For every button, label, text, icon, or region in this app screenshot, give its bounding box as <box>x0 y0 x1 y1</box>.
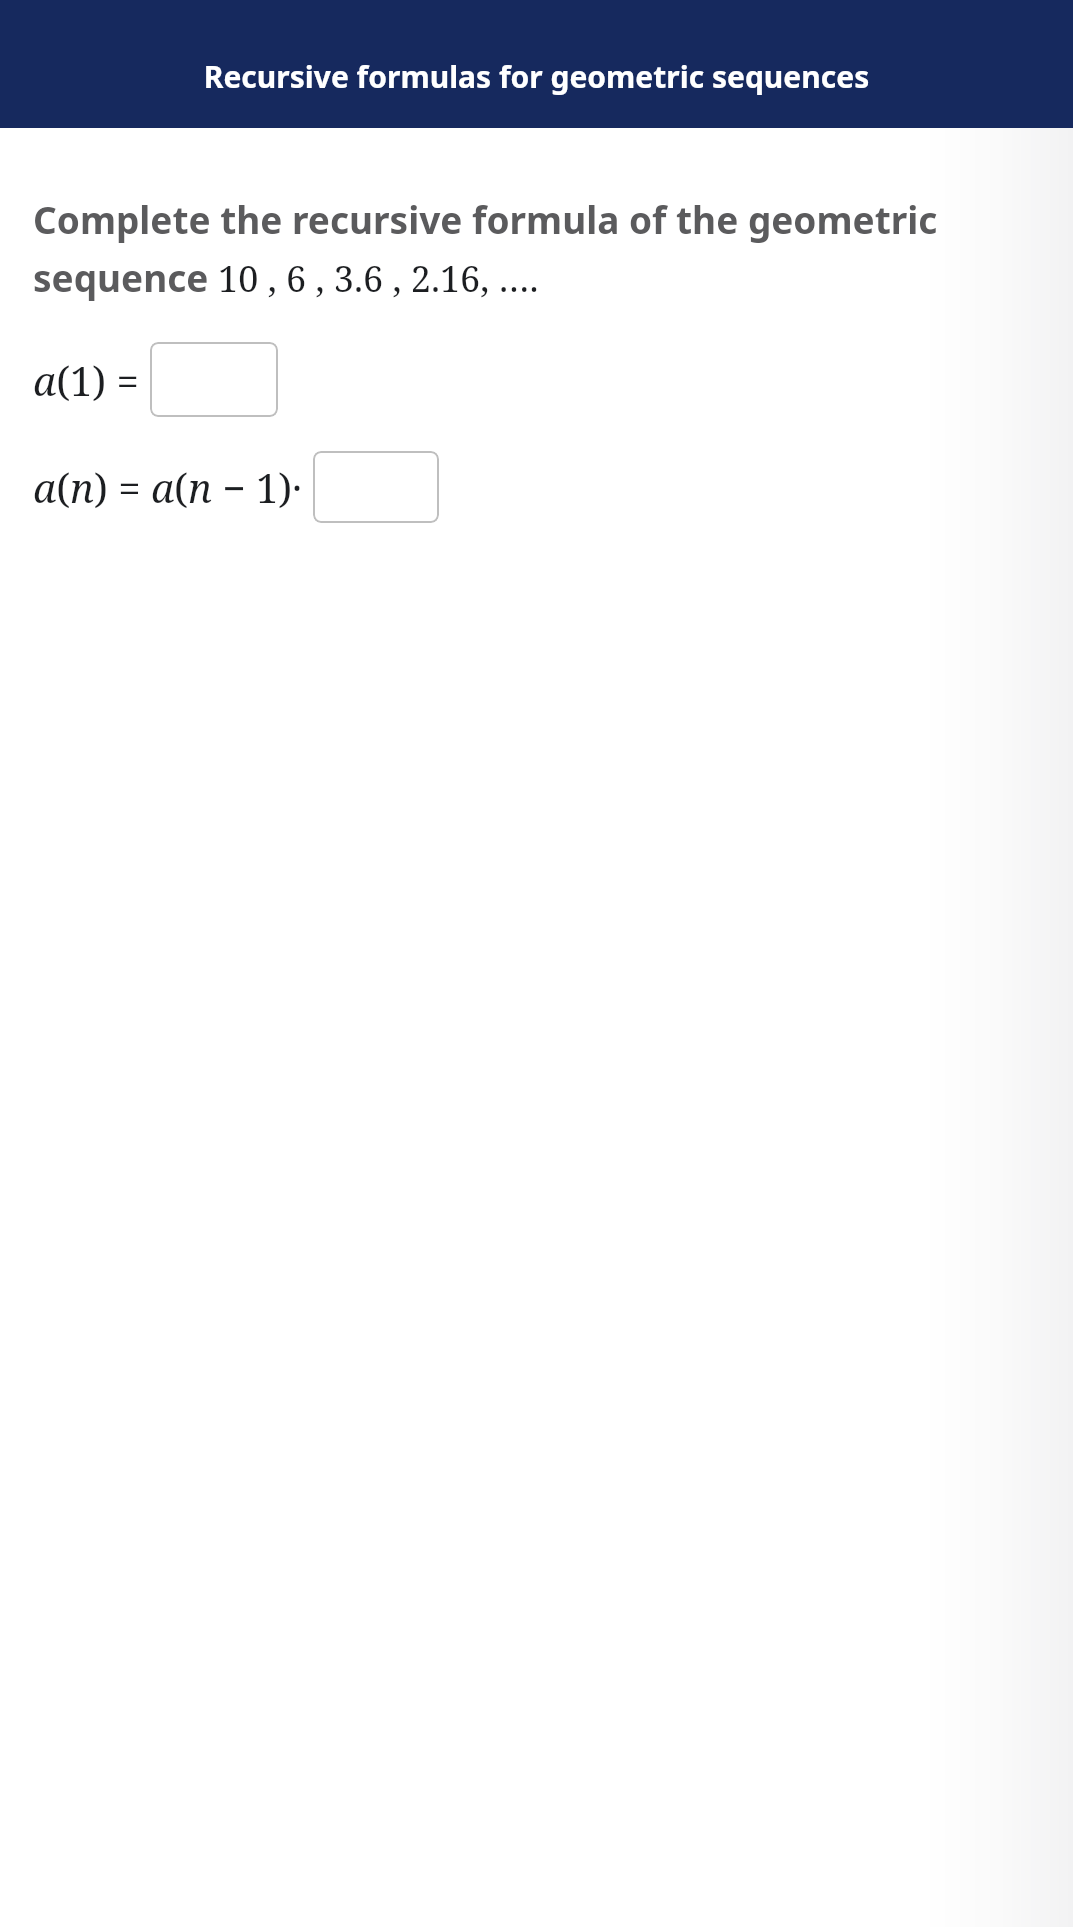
staticText: Complete the recursive formula of the ge… <box>33 194 1061 302</box>
staticText: a(1) = <box>33 353 150 407</box>
staticText: Recursive formulas for geometric sequenc… <box>24 56 1049 97</box>
staticText: a(n) = a(n − 1)· <box>33 460 313 514</box>
button[interactable]: Recursive formulas for geometric sequenc… <box>0 0 1073 128</box>
button[interactable]: Answer input field <box>313 451 439 523</box>
button[interactable]: Answer input field <box>150 342 278 417</box>
